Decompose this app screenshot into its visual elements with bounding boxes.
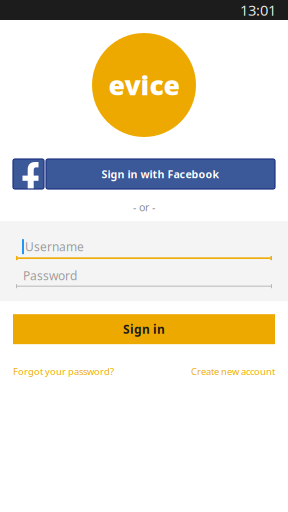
staticText: Sign in <box>123 321 165 337</box>
staticText: Forgot your password? <box>13 365 114 378</box>
staticText: - or - <box>133 200 155 214</box>
staticText: Username <box>25 239 84 255</box>
staticText: 13:01 <box>240 0 276 20</box>
staticText: Create new account <box>191 365 275 378</box>
button[interactable]: Sign in <box>0 314 288 344</box>
staticText: Password <box>23 268 77 284</box>
staticText: Sign in with Facebook <box>101 167 219 181</box>
button[interactable]: Create new account <box>191 365 275 378</box>
staticText: evice <box>108 67 179 103</box>
button[interactable]: Sign in with Facebook <box>0 159 288 189</box>
button[interactable]: Forgot your password? <box>13 365 114 378</box>
